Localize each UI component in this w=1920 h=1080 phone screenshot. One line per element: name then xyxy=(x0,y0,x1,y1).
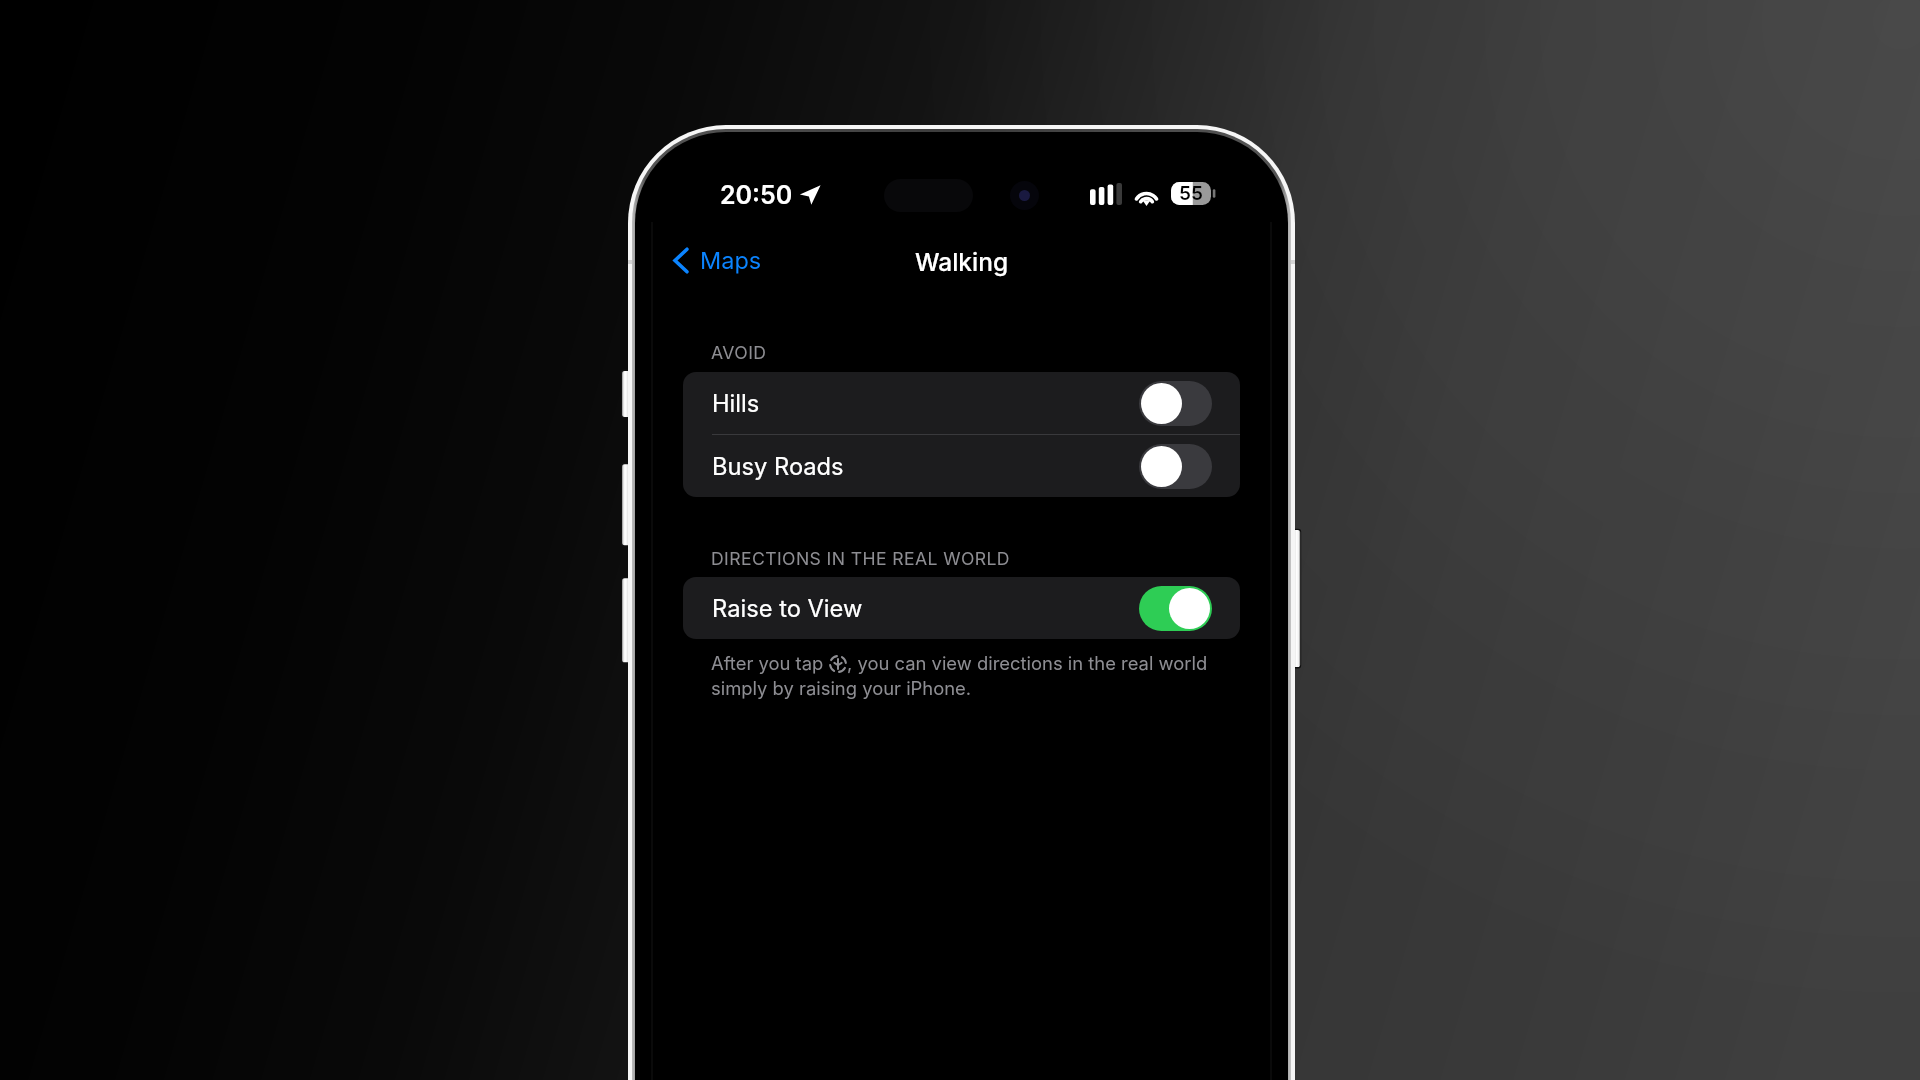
button[interactable]: Busy Roads, off xyxy=(1139,444,1212,489)
staticText: DIRECTIONS IN THE REAL WORLD xyxy=(711,548,1010,569)
staticText: AVOID xyxy=(711,342,767,363)
button[interactable]: Back to Maps xyxy=(665,242,772,278)
staticText: 55 xyxy=(1179,182,1203,205)
staticText: 20:50 xyxy=(720,180,793,210)
staticText: simply by raising your iPhone. xyxy=(711,677,972,699)
staticText: Raise to View xyxy=(712,594,863,623)
button[interactable]: Hills xyxy=(683,372,1240,434)
staticText: , you can view directions in the real wo… xyxy=(847,652,1208,674)
staticText: After you tap xyxy=(711,652,824,674)
staticText: Hills xyxy=(712,389,760,418)
button[interactable]: Raise to View, on xyxy=(1139,586,1212,631)
button[interactable]: Raise to View xyxy=(683,577,1240,639)
staticText: Maps xyxy=(700,246,762,274)
staticText: Busy Roads xyxy=(712,452,844,481)
button[interactable]: Hills, off xyxy=(1139,381,1212,426)
button[interactable]: Busy Roads xyxy=(683,435,1240,497)
staticText: Walking xyxy=(915,247,1009,277)
